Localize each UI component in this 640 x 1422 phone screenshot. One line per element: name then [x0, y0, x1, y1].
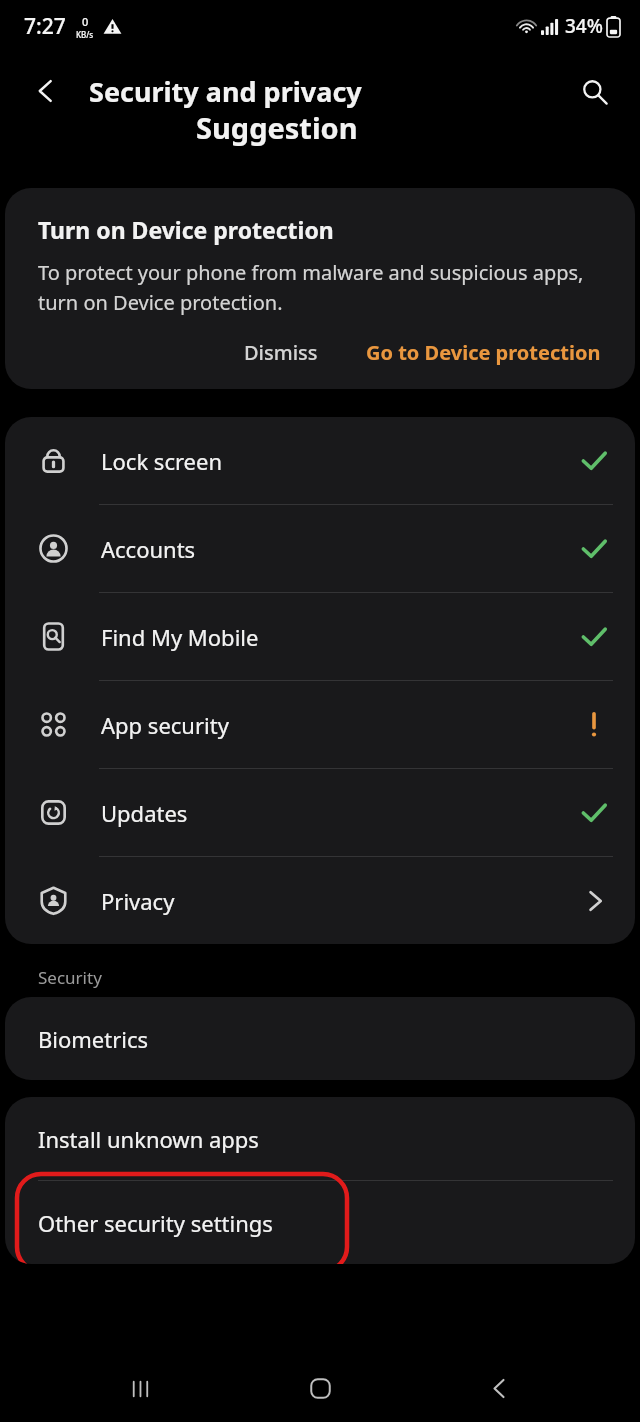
staticText: Install unknown apps [38, 1124, 259, 1154]
staticText: Privacy [101, 886, 582, 916]
button[interactable]: Back [18, 63, 74, 119]
staticText: Updates [101, 798, 580, 828]
button[interactable]: Accounts [5, 505, 635, 592]
staticText: Lock screen [101, 446, 580, 476]
staticText: Find My Mobile [101, 622, 580, 652]
button[interactable]: Privacy [5, 857, 635, 944]
button[interactable]: Turn on Device protection [5, 188, 635, 389]
button[interactable]: Updates [5, 769, 635, 856]
staticText: Security [38, 966, 102, 989]
staticText: 34% [565, 13, 603, 39]
staticText: KB/s [76, 29, 94, 40]
staticText: Turn on Device protection [38, 214, 334, 245]
button[interactable]: Go to Device protection [356, 330, 611, 375]
staticText: 0 [82, 14, 89, 29]
button[interactable]: Biometrics [5, 997, 635, 1080]
button[interactable]: Search [566, 63, 622, 119]
button[interactable]: Recent apps [103, 1355, 179, 1422]
staticText: Go to Device protection [366, 339, 601, 366]
staticText: Other security settings [38, 1208, 273, 1238]
staticText: App security [101, 710, 580, 740]
button[interactable]: Home [282, 1355, 358, 1422]
button[interactable]: Find My Mobile [5, 593, 635, 680]
staticText: Dismiss [244, 339, 318, 366]
staticText: Suggestion [196, 108, 358, 147]
button[interactable]: App security [5, 681, 635, 768]
button[interactable]: Back [461, 1355, 537, 1422]
staticText: Accounts [101, 534, 580, 564]
staticText: Security and privacy [89, 73, 362, 110]
button[interactable]: Lock screen [5, 417, 635, 504]
button[interactable]: Install unknown apps [5, 1097, 635, 1180]
button[interactable]: Other security settings [5, 1181, 635, 1264]
button[interactable]: Dismiss [228, 330, 334, 375]
staticText: Biometrics [38, 1024, 149, 1054]
staticText: To protect your phone from malware and s… [38, 259, 611, 316]
staticText: 7:27 [24, 12, 66, 41]
